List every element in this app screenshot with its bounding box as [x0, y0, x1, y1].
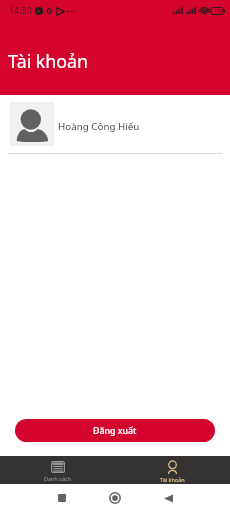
staticText: G: [46, 5, 53, 17]
staticText: Tài khoản: [8, 49, 89, 73]
button[interactable]: Danh sách: [0, 456, 115, 484]
staticText: Đăng xuất: [93, 425, 137, 437]
staticText: 14:30: [9, 5, 32, 17]
button[interactable]: Tài khoản: [115, 456, 230, 484]
staticText: Tài khoản: [160, 476, 185, 483]
staticText: Danh sách: [44, 475, 72, 482]
button[interactable]: Recent apps: [49, 485, 75, 511]
button[interactable]: Home: [102, 485, 128, 511]
staticText: Hoàng Công Hiếu: [58, 120, 140, 133]
button[interactable]: Đăng xuất: [15, 419, 215, 442]
staticText: A: [37, 8, 41, 15]
staticText: 100: [214, 8, 223, 15]
button[interactable]: Hoàng Công Hiếu: [0, 95, 230, 153]
button[interactable]: Back: [155, 485, 181, 511]
